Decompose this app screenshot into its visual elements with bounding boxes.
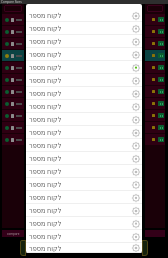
button[interactable]: לקוח מספר bbox=[26, 74, 142, 87]
staticText: לקוח מספר bbox=[29, 63, 62, 72]
button[interactable]: לקוח מספר bbox=[26, 9, 142, 22]
staticText: לקוח מספר bbox=[29, 50, 62, 59]
button[interactable]: Action bbox=[132, 90, 140, 98]
button[interactable] bbox=[145, 62, 165, 73]
button[interactable] bbox=[145, 74, 165, 85]
button[interactable]: Action bbox=[132, 181, 140, 189]
button[interactable] bbox=[145, 122, 165, 133]
button[interactable] bbox=[145, 134, 165, 145]
staticText: לקוח מספר bbox=[29, 167, 62, 176]
staticText: לקוח מספר bbox=[29, 11, 62, 20]
staticText: לקוח מספר bbox=[29, 219, 62, 228]
button[interactable]: לקוח מספר bbox=[26, 113, 142, 126]
staticText: לקוח מספר bbox=[29, 37, 62, 46]
button[interactable]: Action bbox=[132, 12, 140, 20]
staticText: compare bbox=[7, 232, 20, 236]
button[interactable] bbox=[145, 86, 165, 97]
button[interactable] bbox=[2, 50, 24, 61]
button[interactable] bbox=[2, 38, 24, 49]
staticText: Compare Sizes bbox=[1, 0, 22, 4]
button[interactable] bbox=[2, 122, 24, 133]
button[interactable]: Action bbox=[132, 233, 140, 241]
staticText: לקוח מספר bbox=[29, 76, 62, 85]
button[interactable] bbox=[2, 110, 24, 121]
button[interactable]: Action bbox=[132, 38, 140, 46]
staticText: לקוח מספר bbox=[29, 115, 62, 124]
button[interactable] bbox=[2, 74, 24, 85]
button[interactable]: לקוח מספר bbox=[26, 178, 142, 191]
button[interactable] bbox=[145, 26, 165, 37]
staticText: לקוח מספר bbox=[29, 206, 62, 215]
button[interactable]: Action bbox=[132, 116, 140, 124]
button[interactable]: Action bbox=[132, 64, 140, 72]
staticText: לקוח מספר bbox=[29, 89, 62, 98]
staticText: לקוח מספר bbox=[29, 154, 62, 163]
button[interactable]: לקוח מספר bbox=[26, 61, 142, 74]
button[interactable]: Action bbox=[132, 220, 140, 228]
button[interactable] bbox=[2, 62, 24, 73]
button[interactable]: לקוח מספר bbox=[26, 217, 142, 230]
button[interactable]: לקוח מספר bbox=[26, 22, 142, 35]
button[interactable] bbox=[2, 98, 24, 109]
button[interactable]: לקוח מספר bbox=[26, 243, 142, 253]
button[interactable]: compare bbox=[2, 230, 24, 237]
button[interactable]: לקוח מספר bbox=[26, 48, 142, 61]
button[interactable]: לקוח מספר bbox=[26, 165, 142, 178]
button[interactable]: Action bbox=[132, 244, 140, 252]
button[interactable]: Action bbox=[132, 194, 140, 202]
button[interactable] bbox=[2, 26, 24, 37]
staticText: לקוח מספר bbox=[29, 24, 62, 33]
button[interactable] bbox=[4, 5, 22, 12]
button[interactable] bbox=[145, 110, 165, 121]
button[interactable]: לקוח מספר bbox=[26, 139, 142, 152]
button[interactable] bbox=[2, 134, 24, 145]
button[interactable]: לקוח מספר bbox=[26, 230, 142, 243]
button[interactable]: לקוח מספר bbox=[26, 87, 142, 100]
button[interactable]: Action bbox=[132, 207, 140, 215]
button[interactable] bbox=[145, 50, 165, 61]
button[interactable]: לקוח מספר bbox=[26, 35, 142, 48]
button[interactable]: Action bbox=[132, 129, 140, 137]
button[interactable] bbox=[147, 5, 163, 12]
button[interactable]: לקוח מספר bbox=[26, 204, 142, 217]
staticText: לקוח מספר bbox=[29, 232, 62, 241]
button[interactable]: Action bbox=[132, 155, 140, 163]
button[interactable] bbox=[145, 38, 165, 49]
staticText: לקוח מספר bbox=[29, 180, 62, 189]
staticText: לקוח מספר bbox=[29, 141, 62, 150]
button[interactable]: Action bbox=[132, 25, 140, 33]
button[interactable]: Action bbox=[132, 168, 140, 176]
button[interactable]: Action bbox=[132, 77, 140, 85]
button[interactable]: לקוח מספר bbox=[26, 100, 142, 113]
staticText: לקוח מספר bbox=[29, 244, 62, 253]
button[interactable] bbox=[2, 86, 24, 97]
button[interactable] bbox=[2, 14, 24, 25]
staticText: לקוח מספר bbox=[29, 128, 62, 137]
staticText: לקוח מספר bbox=[29, 193, 62, 202]
button[interactable]: Action bbox=[132, 103, 140, 111]
button[interactable]: לקוח מספר bbox=[26, 191, 142, 204]
staticText: לקוח מספר bbox=[29, 102, 62, 111]
button[interactable] bbox=[145, 14, 165, 25]
button[interactable]: Action bbox=[132, 51, 140, 59]
button[interactable] bbox=[145, 98, 165, 109]
button[interactable]: לקוח מספר bbox=[26, 152, 142, 165]
button[interactable]: לקוח מספר bbox=[26, 126, 142, 139]
button[interactable]: Action bbox=[132, 142, 140, 150]
